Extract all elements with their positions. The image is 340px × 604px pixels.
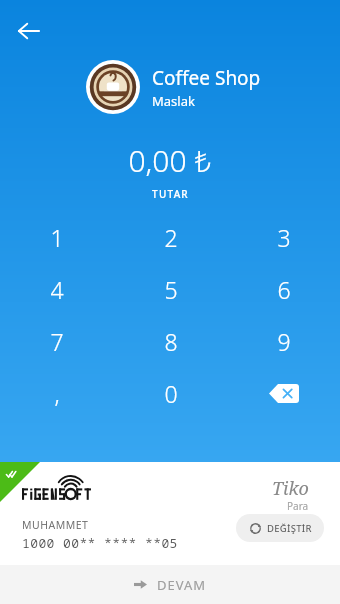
button[interactable]: 1 bbox=[0, 211, 114, 263]
button[interactable]: 3 bbox=[227, 211, 340, 263]
button[interactable]: DEĞİŞTİR bbox=[236, 514, 324, 542]
staticText: 2 bbox=[164, 222, 178, 253]
staticText: 0,00 ₺ bbox=[128, 140, 212, 181]
staticText: MUHAMMET bbox=[22, 518, 89, 532]
staticText: 0 bbox=[164, 378, 178, 409]
button[interactable]: 0 bbox=[114, 367, 227, 419]
staticText: 5 bbox=[164, 274, 178, 305]
staticText: 1000 00** **** **05 bbox=[22, 534, 178, 552]
button[interactable]: , bbox=[0, 367, 114, 419]
staticText: 7 bbox=[50, 326, 64, 357]
staticText: 8 bbox=[164, 326, 178, 357]
button[interactable]: 7 bbox=[0, 315, 114, 367]
staticText: Coffee Shop bbox=[152, 65, 261, 91]
staticText: 1 bbox=[50, 222, 64, 253]
staticText: Para bbox=[287, 499, 309, 513]
staticText: , bbox=[54, 378, 60, 409]
staticText: 9 bbox=[277, 326, 291, 357]
staticText: DEĞİŞTİR bbox=[267, 522, 312, 535]
button[interactable]: 9 bbox=[227, 315, 340, 367]
staticText: TUTAR bbox=[152, 187, 189, 201]
staticText: 4 bbox=[50, 274, 64, 305]
button[interactable]: 8 bbox=[114, 315, 227, 367]
staticText: Tiko bbox=[272, 476, 309, 501]
button[interactable]: 6 bbox=[227, 263, 340, 315]
staticText: DEVAM bbox=[157, 576, 207, 594]
button[interactable]: Back bbox=[10, 12, 48, 50]
staticText: 3 bbox=[277, 222, 291, 253]
staticText: 6 bbox=[277, 274, 291, 305]
button[interactable]: 4 bbox=[0, 263, 114, 315]
button[interactable]: DEVAM bbox=[0, 565, 340, 604]
button[interactable]: 5 bbox=[114, 263, 227, 315]
button[interactable]: 2 bbox=[114, 211, 227, 263]
staticText: Maslak bbox=[152, 92, 195, 110]
button[interactable]: Backspace bbox=[227, 367, 340, 419]
